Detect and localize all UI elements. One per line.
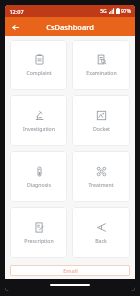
staticText: Examination <box>86 69 117 76</box>
staticText: 12:07 <box>9 8 24 15</box>
staticText: Treatment <box>88 181 114 188</box>
staticText: Complaint <box>26 69 52 76</box>
button[interactable]: Complaint <box>10 40 67 90</box>
button[interactable]: Investigation <box>10 95 67 146</box>
staticText: Email <box>63 267 78 274</box>
button[interactable]: Email <box>10 265 130 276</box>
staticText: Docket <box>93 125 110 132</box>
staticText: Back <box>95 237 107 244</box>
button[interactable]: Back <box>72 207 130 258</box>
button[interactable]: Prescription <box>10 207 67 258</box>
button[interactable]: Docket <box>72 95 130 146</box>
staticText: 97% <box>121 8 131 15</box>
button[interactable]: Diagnosis <box>10 151 67 202</box>
staticText: CsDashboard <box>46 22 94 32</box>
staticText: Investigation <box>23 125 55 132</box>
staticText: Diagnosis <box>27 181 51 188</box>
button[interactable]: Treatment <box>72 151 130 202</box>
staticText: Prescription <box>24 237 54 244</box>
button[interactable]: Examination <box>72 40 130 90</box>
staticText: 5G <box>100 8 107 15</box>
button[interactable]: Back <box>8 20 22 34</box>
